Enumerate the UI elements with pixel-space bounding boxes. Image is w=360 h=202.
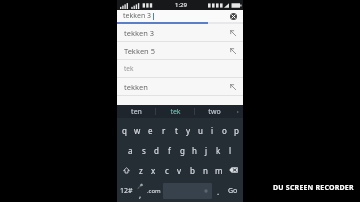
- staticText: w: [134, 125, 141, 136]
- button[interactable]: Insert suggestion tekken 3: [228, 28, 237, 37]
- button[interactable]: Insert suggestion Tekken 5: [228, 46, 237, 55]
- button[interactable]: d: [150, 140, 163, 160]
- button[interactable]: v: [173, 160, 186, 180]
- button[interactable]: a: [124, 140, 137, 160]
- button[interactable]: tekken 3: [117, 10, 243, 22]
- staticText: two: [208, 107, 221, 117]
- button[interactable]: 🎤: [135, 181, 146, 201]
- staticText: m: [215, 165, 223, 176]
- staticText: j: [205, 145, 208, 156]
- staticText: tekken 3: [124, 28, 228, 38]
- button[interactable]: u: [194, 120, 206, 140]
- staticText: ,: [139, 189, 142, 200]
- button[interactable]: q: [118, 120, 131, 140]
- button[interactable]: tekken: [117, 78, 243, 95]
- button[interactable]: .: [213, 181, 224, 201]
- staticText: o: [222, 125, 227, 136]
- staticText: 🎤: [137, 183, 144, 189]
- staticText: x: [151, 165, 156, 176]
- button[interactable]: two: [195, 105, 233, 118]
- button[interactable]: Shift: [118, 160, 134, 180]
- staticText: q: [122, 125, 127, 136]
- staticText: r: [162, 125, 166, 136]
- button[interactable]: k: [212, 140, 224, 160]
- button[interactable]: f: [163, 140, 176, 160]
- staticText: .: [217, 186, 220, 197]
- staticText: c: [165, 165, 169, 176]
- button[interactable]: b: [186, 160, 199, 180]
- button[interactable]: j: [200, 140, 212, 160]
- staticText: 1:29: [175, 1, 187, 9]
- button[interactable]: x: [147, 160, 160, 180]
- button[interactable]: m: [212, 160, 225, 180]
- staticText: p: [234, 125, 239, 136]
- button[interactable]: Clear search: [228, 11, 238, 21]
- button[interactable]: Backspace: [225, 160, 242, 180]
- staticText: tekken: [124, 82, 228, 92]
- button[interactable]: y: [182, 120, 194, 140]
- staticText: t: [175, 125, 178, 136]
- staticText: g: [180, 145, 185, 156]
- staticText: a: [128, 145, 133, 156]
- button[interactable]: p: [230, 120, 242, 140]
- staticText: tek: [170, 107, 181, 117]
- button[interactable]: g: [176, 140, 188, 160]
- button[interactable]: z: [134, 160, 147, 180]
- button[interactable]: More suggestions: [233, 105, 243, 118]
- staticText: tek: [124, 64, 237, 73]
- staticText: Tekken 5: [124, 46, 228, 56]
- staticText: e: [148, 125, 153, 136]
- button[interactable]: i: [206, 120, 218, 140]
- button[interactable]: o: [218, 120, 230, 140]
- staticText: h: [192, 145, 197, 156]
- button[interactable]: .com: [146, 181, 162, 201]
- button[interactable]: tek: [117, 60, 243, 77]
- staticText: b: [190, 165, 195, 176]
- button[interactable]: l: [224, 140, 236, 160]
- button[interactable]: tek: [156, 105, 194, 118]
- staticText: tekken 3: [123, 11, 152, 21]
- staticText: z: [139, 165, 143, 176]
- button[interactable]: Tekken 5: [117, 42, 243, 59]
- button[interactable]: 12#: [118, 181, 135, 201]
- staticText: d: [154, 145, 159, 156]
- button[interactable]: tekken 3: [117, 24, 243, 41]
- button[interactable]: r: [157, 120, 170, 140]
- button[interactable]: s: [137, 140, 150, 160]
- staticText: v: [177, 165, 182, 176]
- button[interactable]: Insert suggestion tekken: [228, 82, 237, 91]
- staticText: y: [186, 125, 191, 136]
- button[interactable]: h: [188, 140, 200, 160]
- staticText: k: [216, 145, 221, 156]
- button[interactable]: e: [144, 120, 157, 140]
- button[interactable]: c: [160, 160, 173, 180]
- button[interactable]: w: [131, 120, 144, 140]
- staticText: i: [211, 125, 214, 136]
- button[interactable]: ten: [117, 105, 155, 118]
- button[interactable]: n: [199, 160, 212, 180]
- button[interactable]: t: [170, 120, 182, 140]
- button[interactable]: Space: [163, 183, 212, 199]
- staticText: .com: [147, 187, 161, 195]
- staticText: DU SCREEN RECORDER: [273, 183, 354, 193]
- staticText: l: [229, 145, 232, 156]
- staticText: ten: [131, 107, 142, 117]
- staticText: s: [142, 145, 146, 156]
- button[interactable]: Go: [224, 181, 242, 201]
- staticText: u: [198, 125, 203, 136]
- staticText: 12#: [120, 186, 133, 196]
- staticText: n: [203, 165, 208, 176]
- staticText: Go: [228, 186, 238, 196]
- staticText: f: [168, 145, 171, 156]
